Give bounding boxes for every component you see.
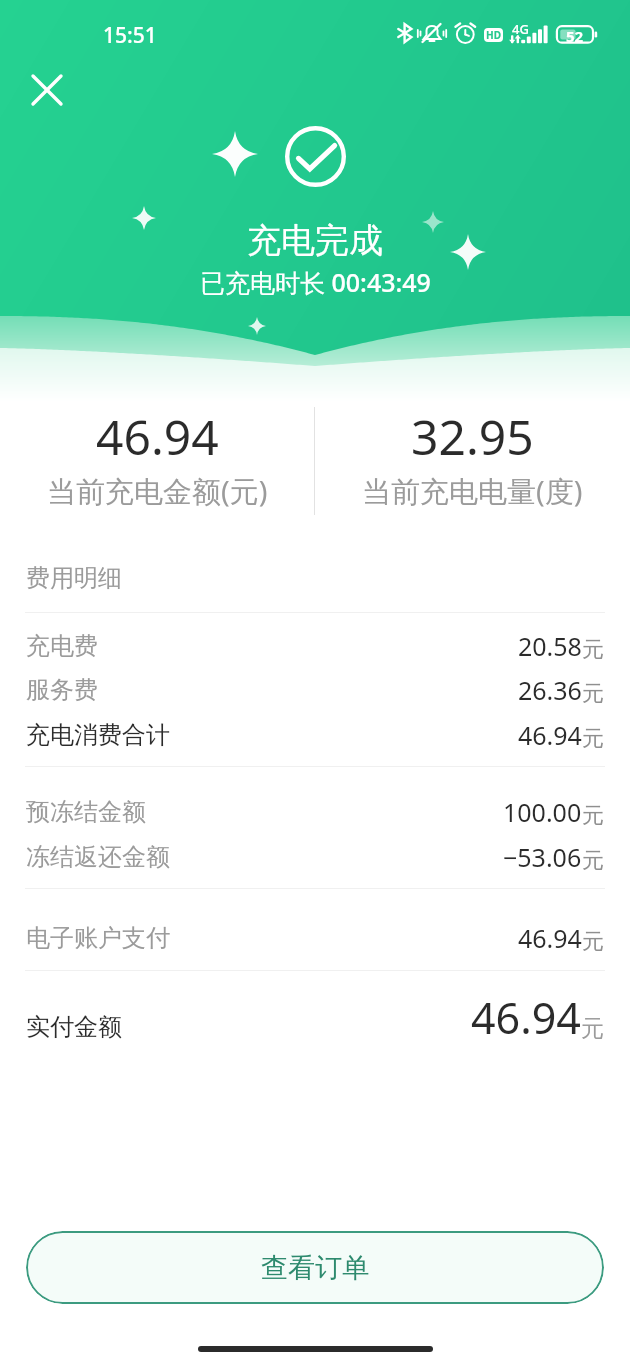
staticText: 充电消费合计 [26, 720, 170, 750]
staticText: 实付金额 [26, 1012, 122, 1042]
staticText: −53.06 [503, 840, 582, 874]
staticText: 元 [582, 680, 604, 708]
staticText: 46.94 [96, 404, 219, 469]
staticText: 46.94 [518, 718, 582, 752]
staticText: 46.94 [471, 988, 581, 1046]
staticText: 预冻结金额 [26, 797, 146, 827]
staticText: 26.36 [518, 673, 582, 707]
staticText: 服务费 [26, 675, 98, 705]
staticText: 32.95 [411, 404, 534, 469]
staticText: 元 [581, 1014, 604, 1043]
staticText: 元 [582, 725, 604, 753]
button[interactable]: Close [13, 56, 80, 123]
staticText: 充电费 [26, 631, 98, 661]
staticText: 当前充电金额(元) [47, 471, 268, 511]
staticText: 4G [512, 20, 529, 38]
staticText: 15:51 [103, 21, 157, 50]
staticText: 46.94 [518, 921, 582, 955]
staticText: 52 [566, 26, 584, 43]
staticText: 元 [582, 636, 604, 664]
staticText: 费用明细 [26, 563, 122, 593]
staticText: 当前充电电量(度) [362, 471, 583, 511]
staticText: 20.58 [518, 629, 582, 663]
staticText: 元 [582, 928, 604, 956]
staticText: 查看订单 [261, 1251, 369, 1285]
staticText: 电子账户支付 [26, 923, 170, 953]
staticText: 已充电时长 00:43:49 [200, 265, 431, 299]
staticText: 100.00 [503, 795, 582, 829]
staticText: 充电完成 [247, 219, 383, 262]
staticText: 元 [582, 802, 604, 830]
staticText: 元 [582, 847, 604, 875]
staticText: HD [486, 28, 501, 42]
button[interactable]: 查看订单 [26, 1231, 604, 1304]
staticText: 冻结返还金额 [26, 842, 170, 872]
